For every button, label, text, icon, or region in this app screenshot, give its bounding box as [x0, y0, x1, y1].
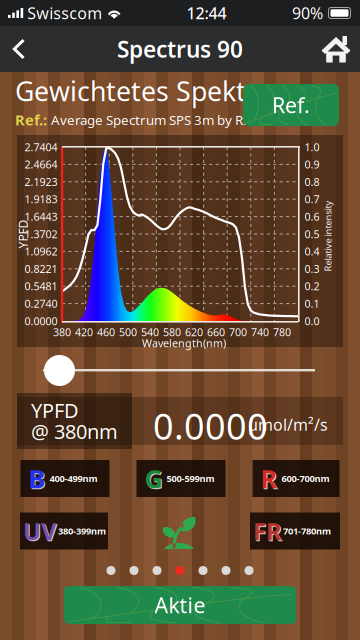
staticText: Gewichtetes Spektrum [15, 73, 298, 109]
staticText: 0.4 [304, 244, 319, 258]
staticText: 500-599nm [166, 472, 214, 485]
staticText: 580 [163, 325, 181, 339]
staticText: FR [253, 515, 282, 547]
staticText: 620 [185, 325, 203, 339]
staticText: 0.5 [304, 227, 319, 241]
staticText: Ref. [272, 91, 310, 119]
staticText: 0.1 [304, 296, 319, 311]
staticText: 1.9183 [24, 192, 57, 206]
staticText: 0.0000 [24, 314, 57, 328]
staticText: G [144, 462, 162, 495]
staticText: 780 [273, 325, 291, 339]
staticText: 2.4664 [24, 157, 57, 171]
staticText: Relative intensity [292, 230, 360, 242]
staticText: Average Spectrum SPS 3m by R. [51, 111, 247, 129]
button[interactable]: R [252, 460, 339, 497]
staticText: 600-700nm [281, 472, 329, 485]
button[interactable]: Wavelength slider [44, 355, 75, 386]
staticText: 1.0962 [24, 244, 57, 258]
staticText: 90% [292, 2, 323, 24]
staticText: YPFD [8, 226, 37, 242]
staticText: Ref.: [15, 110, 47, 129]
staticText: 0.5481 [24, 279, 57, 293]
staticText: 380 [53, 325, 71, 339]
staticText: 1.3702 [24, 227, 57, 241]
staticText: 700 [229, 325, 247, 339]
staticText: 0.0 [304, 314, 319, 328]
button[interactable]: Home [312, 26, 360, 72]
staticText: 740 [251, 325, 269, 339]
staticText: Swisscom [27, 2, 102, 24]
staticText: 0.2 [304, 279, 319, 293]
staticText: 701-780nm [283, 525, 331, 537]
staticText: UV [24, 516, 58, 548]
staticText: 2.1923 [24, 175, 57, 189]
staticText: YPFD [31, 397, 79, 424]
staticText: 0.0000 [153, 402, 268, 450]
staticText: R [261, 463, 278, 496]
staticText: 0.8 [304, 175, 319, 189]
staticText: 0.3 [304, 262, 319, 276]
staticText: 400-499nm [49, 472, 97, 485]
staticText: 0.2740 [24, 296, 57, 311]
staticText: 0.9 [304, 157, 319, 171]
button[interactable]: Aktie [64, 586, 296, 624]
staticText: 1.6443 [24, 209, 57, 224]
button[interactable]: FR [250, 512, 340, 549]
staticText: 660 [207, 325, 225, 339]
staticText: B [28, 462, 45, 495]
button[interactable]: UV [20, 512, 108, 549]
staticText: UV [23, 515, 57, 547]
staticText: 500 [119, 325, 137, 339]
staticText: G [145, 463, 163, 496]
button[interactable]: Back [0, 26, 37, 72]
button[interactable]: Ref. [243, 84, 339, 126]
button[interactable]: B [20, 460, 109, 497]
staticText: 1.0 [304, 140, 319, 154]
staticText: @ 380nm [31, 418, 118, 445]
staticText: 460 [97, 325, 115, 339]
staticText: 2.7404 [24, 140, 57, 154]
staticText: 540 [141, 325, 159, 339]
staticText: Spectrus 90 [117, 34, 243, 64]
staticText: B [29, 463, 46, 496]
staticText: R [260, 462, 277, 495]
staticText: 0.6 [304, 209, 319, 224]
button[interactable]: G [136, 460, 225, 497]
staticText: 0.7 [304, 192, 319, 206]
staticText: 0.8221 [24, 262, 57, 276]
staticText: 12:44 [187, 2, 227, 24]
staticText: Wavelength(nm) [142, 336, 226, 350]
staticText: 420 [75, 325, 93, 339]
staticText: µmol/m²/s [248, 414, 328, 435]
staticText: FR [254, 516, 283, 548]
staticText: Aktie [154, 591, 205, 619]
staticText: 380-399nm [58, 525, 106, 537]
